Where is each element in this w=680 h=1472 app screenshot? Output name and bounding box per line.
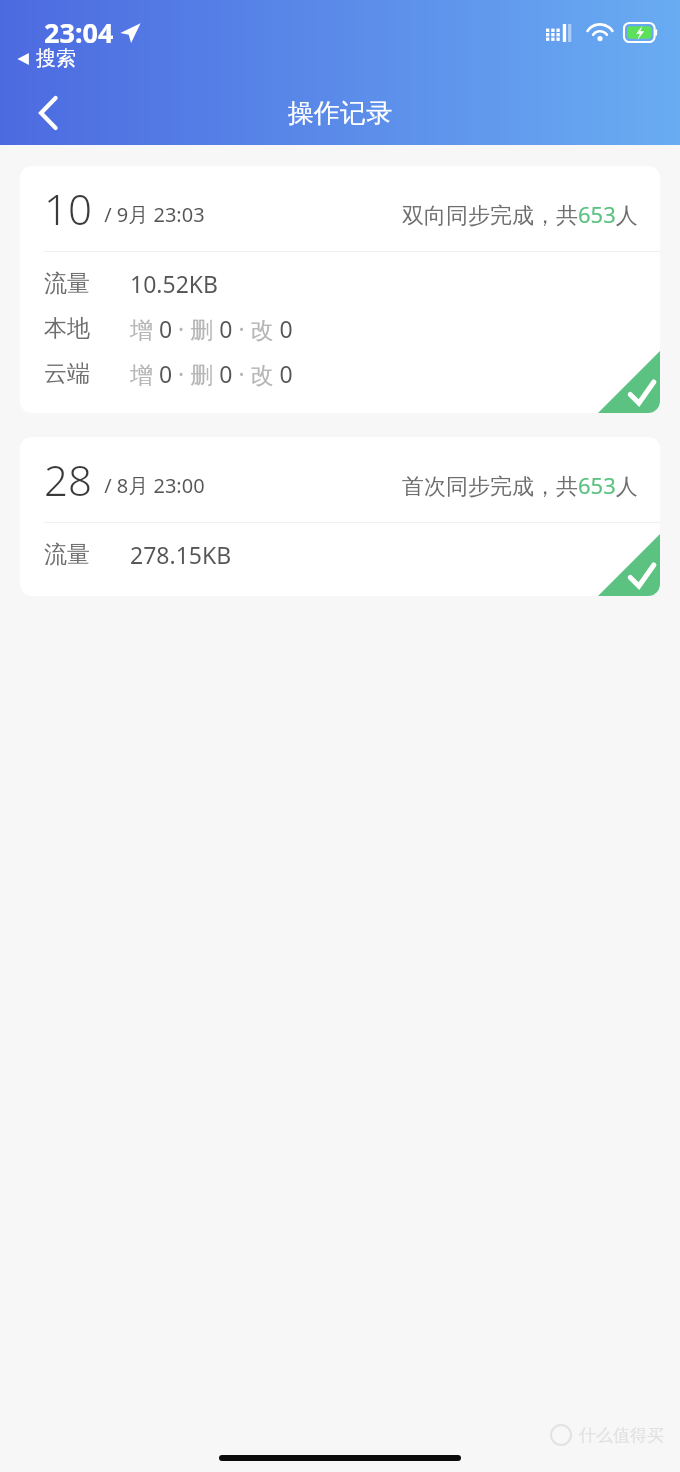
staticText: 流量 bbox=[44, 540, 90, 569]
staticText: 23:04 bbox=[44, 14, 114, 51]
staticText: 首次同步完成，共653人 bbox=[402, 470, 638, 500]
staticText: 10 bbox=[44, 180, 92, 237]
staticText: 操作记录 bbox=[288, 97, 392, 130]
staticText: 28 bbox=[44, 451, 92, 508]
staticText: 增 0 · 删 0 · 改 0 bbox=[130, 358, 293, 389]
staticText: 云端 bbox=[44, 359, 90, 388]
staticText: 搜索 bbox=[36, 46, 76, 71]
button[interactable]: Back bbox=[22, 87, 74, 139]
staticText: / 8月 23:00 bbox=[99, 472, 205, 499]
staticText: 双向同步完成，共653人 bbox=[402, 199, 638, 229]
staticText: 本地 bbox=[44, 314, 90, 343]
staticText: 278.15KB bbox=[130, 539, 232, 570]
staticText: 流量 bbox=[44, 269, 90, 298]
staticText: / 9月 23:03 bbox=[99, 201, 205, 228]
button[interactable]: 28 bbox=[20, 437, 660, 596]
staticText: 什么值得买 bbox=[579, 1425, 664, 1446]
button[interactable]: 10 bbox=[20, 166, 660, 413]
staticText: 增 0 · 删 0 · 改 0 bbox=[130, 313, 293, 344]
button[interactable]: 搜索 bbox=[14, 44, 78, 73]
staticText: 10.52KB bbox=[130, 268, 218, 299]
